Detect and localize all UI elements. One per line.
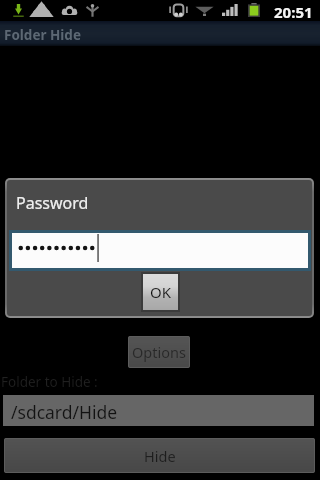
other: Vibrate xyxy=(168,3,189,17)
other: Download xyxy=(15,4,22,15)
staticText: Folder Hide xyxy=(4,26,81,44)
staticText: Password xyxy=(16,192,89,214)
other: Wi-Fi xyxy=(195,4,214,16)
button[interactable]: Options xyxy=(128,336,190,368)
staticText: Hide xyxy=(144,446,176,466)
button[interactable]: OK xyxy=(143,274,178,310)
button[interactable]: /sdcard/Hide xyxy=(3,395,314,426)
button[interactable]: Hide xyxy=(4,438,315,473)
other: Battery xyxy=(248,3,260,17)
staticText: 20:51 xyxy=(274,2,313,22)
other: Sync xyxy=(33,3,50,17)
other: Signal xyxy=(222,4,238,16)
staticText: OK xyxy=(150,282,172,302)
staticText: Folder to Hide : xyxy=(1,373,98,391)
staticText: /sdcard/Hide xyxy=(11,400,118,424)
other: Connection xyxy=(86,4,99,17)
button[interactable] xyxy=(12,233,308,268)
other: Cloud xyxy=(61,4,78,16)
staticText: Options xyxy=(132,342,186,362)
